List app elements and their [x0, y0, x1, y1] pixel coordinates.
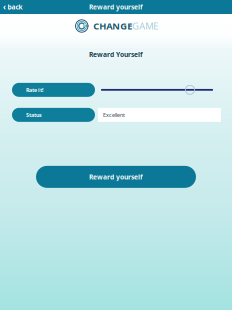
staticText: back: [7, 3, 22, 11]
staticText: ‹: [3, 2, 6, 12]
staticText: GAME: [132, 20, 158, 32]
button[interactable]: ‹: [0, 0, 52, 14]
staticText: Excellent: [103, 111, 125, 118]
staticText: Reward Yourself: [89, 50, 143, 59]
staticText: Status: [26, 111, 42, 118]
staticText: Reward yourself: [89, 3, 143, 11]
staticText: Rate it!: [26, 86, 44, 93]
button[interactable]: Reward yourself: [36, 166, 196, 188]
staticText: Reward yourself: [89, 172, 143, 181]
staticText: CHANGE: [93, 20, 132, 32]
